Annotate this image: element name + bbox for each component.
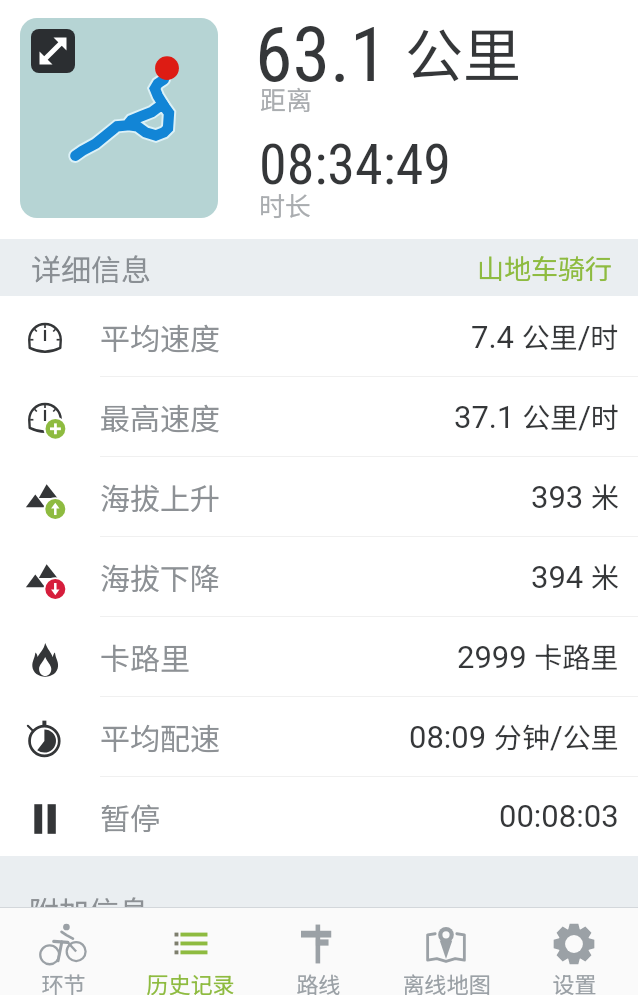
button[interactable]: 详细信息 (0, 239, 638, 296)
button[interactable]: 离线地图 (382, 908, 510, 995)
button[interactable]: 海拔下降 (0, 536, 638, 616)
button[interactable]: 暂停 (0, 776, 638, 856)
button[interactable]: 附加信息 (0, 856, 638, 907)
button[interactable]: 设置 (510, 908, 638, 995)
staticText: 37.1 公里/时 (454, 396, 619, 437)
button[interactable]: 平均速度 (0, 296, 638, 376)
staticText: 公里 (405, 10, 522, 94)
button[interactable]: 卡路里 (0, 616, 638, 696)
staticText: 历史记录 (146, 967, 235, 995)
staticText: 08:09 分钟/公里 (409, 716, 619, 757)
staticText: 平均速度 (100, 315, 220, 358)
staticText: 路线 (296, 967, 341, 995)
button[interactable]: 历史记录 (127, 908, 254, 995)
staticText: 2999 卡路里 (457, 636, 619, 677)
staticText: 山地车骑行 (477, 248, 612, 287)
staticText: 08:34:49 (259, 132, 452, 198)
staticText: 海拔下降 (100, 555, 220, 598)
staticText: 设置 (552, 967, 597, 995)
button[interactable]: 环节 (0, 908, 127, 995)
staticText: 63.1 (255, 10, 388, 99)
staticText: 详细信息 (31, 246, 151, 289)
staticText: 卡路里 (100, 635, 190, 678)
staticText: 7.4 公里/时 (471, 316, 619, 357)
staticText: 附加信息 (29, 888, 149, 931)
staticText: 00:08:03 (499, 798, 619, 834)
button[interactable]: Expand map (31, 29, 75, 73)
staticText: 海拔上升 (100, 475, 220, 518)
staticText: 时长 (259, 186, 312, 224)
staticText: 距离 (260, 80, 313, 118)
button[interactable]: 海拔上升 (0, 456, 638, 536)
button[interactable]: 最高速度 (0, 376, 638, 456)
staticText: 平均配速 (100, 715, 220, 758)
button[interactable]: 路线 (254, 908, 382, 995)
staticText: 393 米 (531, 476, 619, 517)
staticText: 最高速度 (100, 395, 220, 438)
staticText: 环节 (41, 967, 86, 995)
button[interactable]: Route map (20, 18, 218, 218)
staticText: 离线地图 (402, 967, 491, 995)
staticText: 394 米 (531, 556, 619, 597)
staticText: 暂停 (100, 795, 160, 838)
button[interactable]: 平均配速 (0, 696, 638, 776)
